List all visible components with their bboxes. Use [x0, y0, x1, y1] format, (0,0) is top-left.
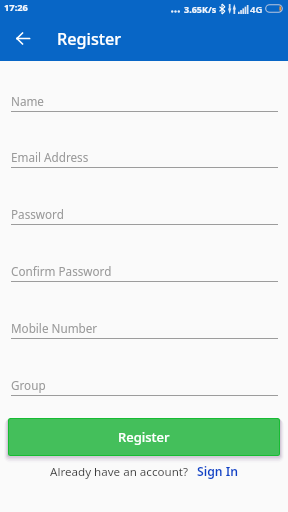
staticText: 3.65K/s: [184, 3, 217, 15]
staticText: Already have an account?: [50, 464, 189, 480]
button[interactable]: Email Address: [0, 135, 288, 172]
staticText: Mobile Number: [11, 320, 98, 336]
button[interactable]: Confirm Password: [0, 249, 288, 286]
button[interactable]: Group: [0, 363, 288, 400]
staticText: Name: [11, 93, 44, 109]
button[interactable]: Sign In: [197, 463, 239, 480]
staticText: Register: [57, 28, 122, 50]
staticText: 17:26: [4, 1, 28, 14]
button[interactable]: Mobile Number: [0, 306, 288, 343]
staticText: Group: [11, 377, 46, 393]
staticText: Email Address: [11, 149, 89, 165]
staticText: Register: [118, 428, 170, 446]
staticText: Password: [11, 206, 64, 222]
button[interactable]: Password: [0, 192, 288, 229]
button[interactable]: Back: [9, 25, 36, 52]
staticText: Sign In: [197, 463, 239, 480]
button[interactable]: Name: [0, 79, 288, 116]
button[interactable]: Register: [9, 419, 279, 455]
staticText: Confirm Password: [11, 263, 112, 279]
staticText: 4G: [250, 3, 263, 16]
